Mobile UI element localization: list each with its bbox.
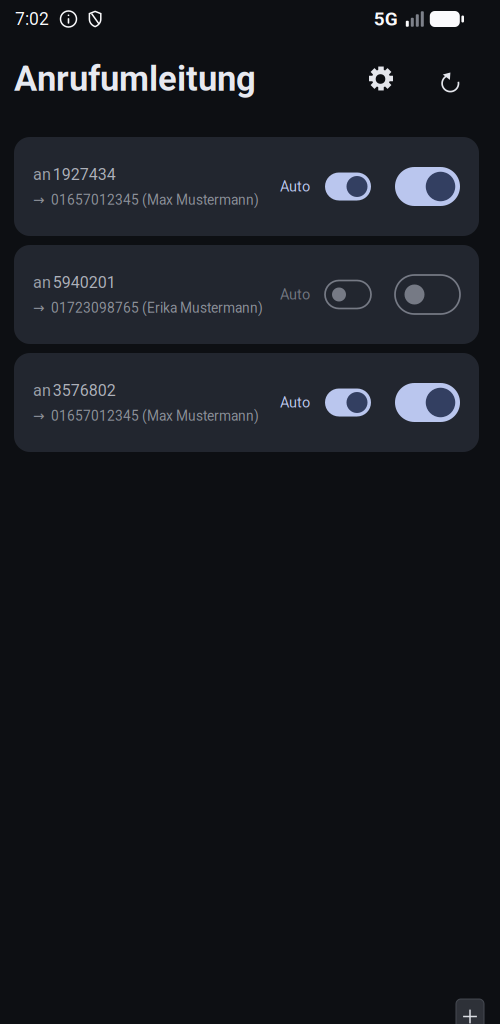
staticText: 5G <box>374 8 398 30</box>
staticText: 3576802 <box>53 381 116 400</box>
staticText: → 01657012345 (Max Mustermann) <box>33 192 259 208</box>
button[interactable]: an <box>14 245 479 344</box>
button[interactable]: an <box>14 137 479 236</box>
staticText: an <box>33 273 51 292</box>
button[interactable]: Add forwarding <box>456 999 484 1024</box>
staticText: 5940201 <box>53 273 116 292</box>
staticText: Auto <box>280 286 310 303</box>
staticText: Auto <box>280 178 310 195</box>
button[interactable]: an <box>14 353 479 452</box>
staticText: 1927434 <box>53 165 116 184</box>
staticText: Anrufumleitung <box>14 59 256 99</box>
button[interactable]: Refresh <box>427 57 471 101</box>
button[interactable]: Settings <box>359 57 403 101</box>
staticText: → 01723098765 (Erika Mustermann) <box>33 300 263 316</box>
staticText: Auto <box>280 394 310 411</box>
staticText: → 01657012345 (Max Mustermann) <box>33 408 259 424</box>
staticText: an <box>33 381 51 400</box>
staticText: 7:02 <box>15 9 49 29</box>
staticText: an <box>33 165 51 184</box>
